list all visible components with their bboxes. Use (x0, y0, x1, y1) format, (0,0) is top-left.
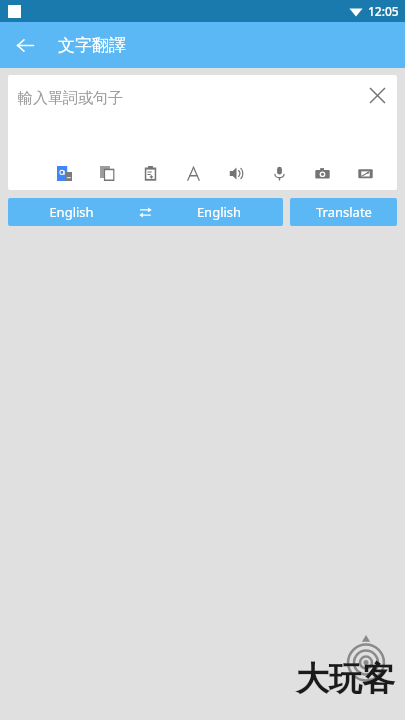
staticText: 文字翻譯 (58, 35, 126, 56)
button[interactable]: Camera (310, 161, 334, 185)
button[interactable]: Voice input (267, 161, 291, 185)
staticText: English (8, 203, 135, 221)
staticText: 大玩客 (296, 658, 395, 700)
button[interactable]: Copy (95, 161, 119, 185)
staticText: English (155, 203, 283, 221)
button[interactable]: Back (10, 30, 40, 60)
staticText: Translate (316, 203, 372, 221)
button[interactable]: Translate (290, 198, 397, 226)
button[interactable]: Text size (181, 161, 205, 185)
button[interactable]: Clear text (361, 79, 393, 111)
button[interactable]: English (8, 198, 283, 226)
staticText: 輸入單詞或句子 (18, 89, 123, 108)
button[interactable]: Translate with Google (52, 161, 76, 185)
staticText: 12:05 (368, 3, 399, 19)
button[interactable]: Scan image (353, 161, 377, 185)
button[interactable]: Speak (224, 161, 248, 185)
button[interactable]: Paste from clipboard (138, 161, 162, 185)
